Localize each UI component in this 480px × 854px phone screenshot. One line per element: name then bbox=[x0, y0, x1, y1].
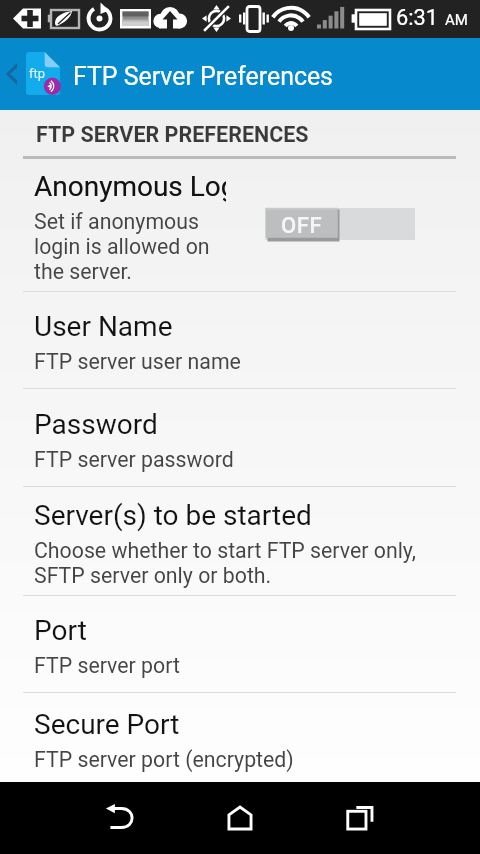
staticText: FTP server port bbox=[34, 653, 180, 678]
staticText: FTP server password bbox=[34, 447, 234, 472]
staticText: 6:31 bbox=[396, 5, 439, 31]
staticText: FTP SERVER PREFERENCES bbox=[36, 122, 309, 147]
button[interactable]: Secure Port bbox=[0, 693, 480, 782]
staticText: login is allowed on bbox=[34, 234, 210, 259]
button[interactable]: Port bbox=[0, 596, 480, 692]
staticText: OFF bbox=[281, 213, 323, 239]
staticText: Set if anonymous bbox=[34, 209, 199, 234]
staticText: Anonymous Login bbox=[34, 170, 226, 203]
staticText: Server(s) to be started bbox=[34, 499, 312, 532]
button[interactable]: Home bbox=[180, 782, 300, 854]
button[interactable]: Recent apps bbox=[300, 782, 420, 854]
button[interactable]: Anonymous Login bbox=[0, 159, 480, 291]
staticText: FTP Server Preferences bbox=[73, 62, 333, 91]
button[interactable]: User Name bbox=[0, 292, 480, 388]
staticText: Password bbox=[34, 408, 158, 441]
staticText: Port bbox=[34, 614, 87, 647]
staticText: User Name bbox=[34, 310, 173, 343]
staticText: Secure Port bbox=[34, 708, 180, 741]
button[interactable]: OFF bbox=[265, 207, 415, 243]
staticText: AM bbox=[445, 11, 468, 29]
staticText: ftp bbox=[29, 66, 46, 81]
button[interactable]: Password bbox=[0, 389, 480, 486]
button[interactable]: Navigate up bbox=[0, 38, 24, 110]
staticText: the server. bbox=[34, 259, 132, 284]
staticText: Choose whether to start FTP server only, bbox=[34, 538, 416, 563]
button[interactable]: Server(s) to be started bbox=[0, 487, 480, 595]
button[interactable]: Back bbox=[60, 782, 180, 854]
staticText: SFTP server only or both. bbox=[34, 563, 272, 588]
staticText: FTP server user name bbox=[34, 349, 241, 374]
staticText: FTP server port (encrypted) bbox=[34, 747, 294, 772]
